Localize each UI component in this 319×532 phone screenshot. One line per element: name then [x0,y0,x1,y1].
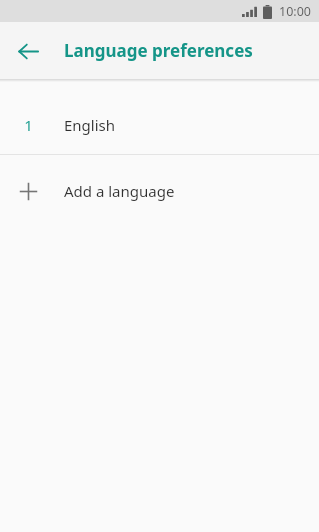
staticText: Add a language [64,181,175,201]
staticText: 1 [24,115,33,135]
staticText: 10:00 [279,3,311,20]
button[interactable]: 1 [0,96,319,154]
button[interactable]: Add a language [0,155,319,227]
staticText: Language preferences [64,39,253,62]
button[interactable]: Back [8,31,48,71]
staticText: English [64,115,116,135]
